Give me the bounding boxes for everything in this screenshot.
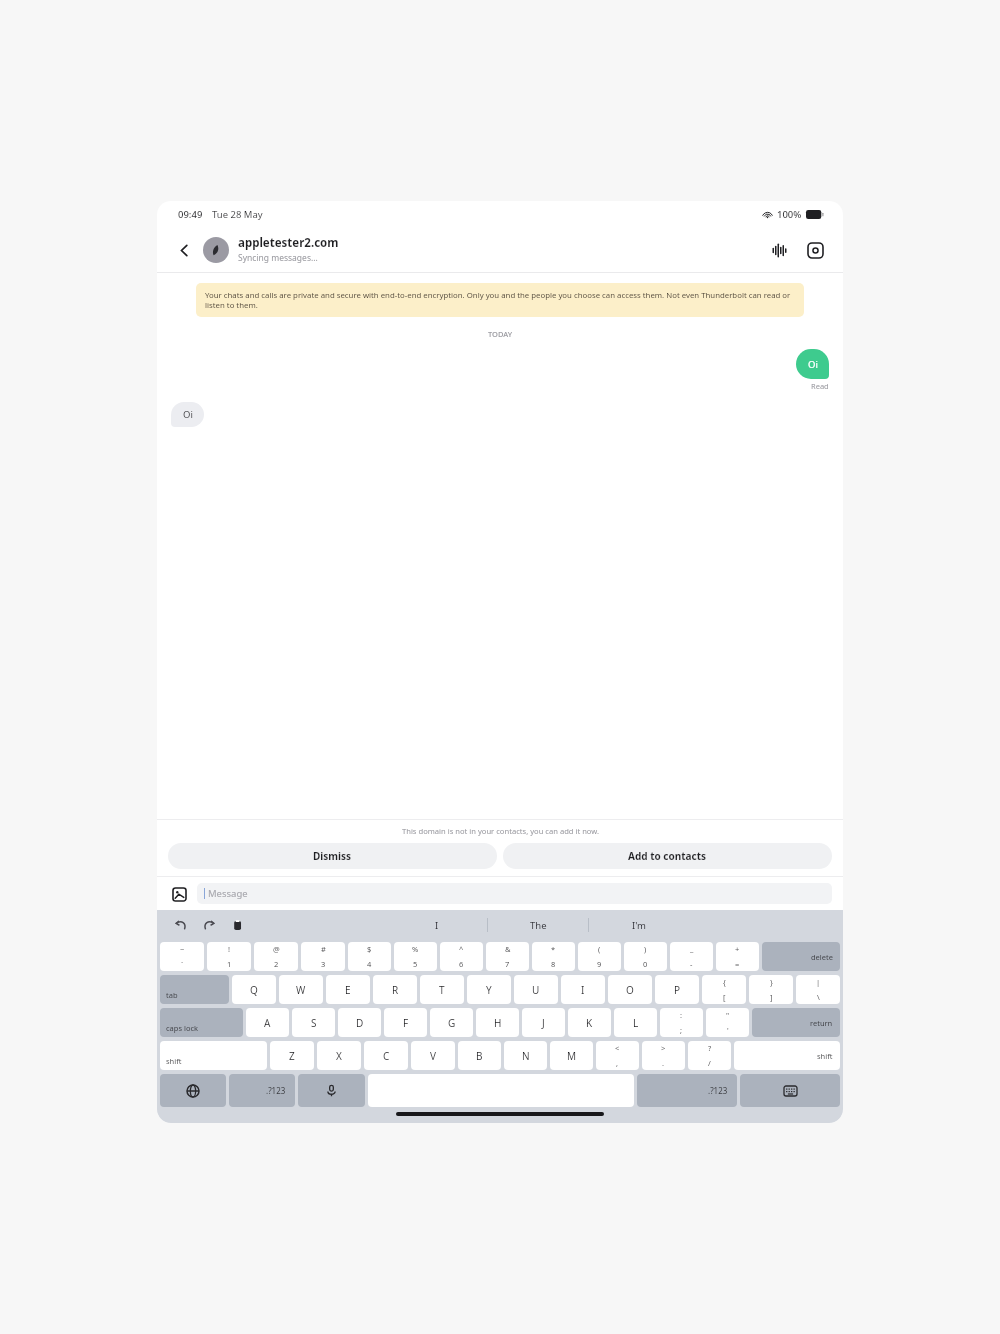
staticText: F (403, 1016, 409, 1030)
button[interactable]: Message (197, 883, 832, 904)
button[interactable]: Video call (801, 236, 829, 264)
button[interactable]: G (430, 1008, 473, 1037)
button[interactable]: Oi (171, 402, 204, 427)
staticText: H (494, 1016, 502, 1030)
button[interactable]: .?123 (637, 1074, 737, 1107)
button[interactable]: Add to contacts (503, 843, 832, 869)
staticText: " (726, 1010, 730, 1020)
button[interactable]: @ (254, 942, 298, 971)
button[interactable]: * (532, 942, 575, 971)
staticText: I (581, 983, 585, 997)
button[interactable]: appletester2.com (203, 235, 765, 264)
button[interactable]: return (752, 1008, 840, 1037)
button[interactable]: Y (467, 975, 511, 1004)
button[interactable]: # (301, 942, 345, 971)
button[interactable]: shift (734, 1041, 840, 1070)
button[interactable]: Oi (796, 349, 829, 379)
button[interactable]: { (702, 975, 746, 1004)
staticText: : (680, 1010, 683, 1020)
button[interactable]: S (292, 1008, 335, 1037)
button[interactable]: .?123 (229, 1074, 295, 1107)
staticText: ` (181, 959, 184, 969)
staticText: T (439, 983, 445, 997)
button[interactable]: M (550, 1041, 593, 1070)
staticText: 2 (274, 959, 279, 969)
button[interactable]: L (614, 1008, 657, 1037)
staticText: 9 (597, 959, 602, 969)
button[interactable]: N (504, 1041, 547, 1070)
button[interactable]: I (561, 975, 605, 1004)
staticText: A (264, 1016, 271, 1030)
button[interactable]: Change language (160, 1074, 226, 1107)
button[interactable]: Z (270, 1041, 314, 1070)
button[interactable]: D (338, 1008, 381, 1037)
staticText: # (321, 944, 326, 954)
button[interactable]: Attach image (168, 883, 190, 905)
button[interactable]: R (373, 975, 417, 1004)
button[interactable]: P (655, 975, 699, 1004)
button[interactable]: % (394, 942, 437, 971)
button[interactable]: ~ (160, 942, 204, 971)
staticText: - (690, 959, 693, 969)
button[interactable]: The (488, 910, 588, 940)
button[interactable]: Hide keyboard (740, 1074, 840, 1107)
button[interactable]: ) (624, 942, 667, 971)
staticText: ~ (180, 944, 185, 954)
button[interactable]: | (796, 975, 840, 1004)
button[interactable]: Q (232, 975, 276, 1004)
button[interactable]: I (387, 910, 487, 940)
button[interactable]: _ (670, 942, 713, 971)
button[interactable]: Dictate (298, 1074, 365, 1107)
button[interactable]: E (326, 975, 370, 1004)
staticText: appletester2.com (238, 235, 339, 251)
staticText: Add to contacts (628, 849, 707, 863)
button[interactable]: < (596, 1041, 639, 1070)
button[interactable]: ? (688, 1041, 731, 1070)
staticText: Z (289, 1049, 295, 1063)
staticText: 0 (643, 959, 648, 969)
button[interactable]: ( (578, 942, 621, 971)
button[interactable]: X (317, 1041, 361, 1070)
button[interactable]: ! (207, 942, 251, 971)
staticText: O (626, 983, 634, 997)
staticText: 100% (777, 208, 802, 221)
button[interactable]: + (716, 942, 759, 971)
button[interactable]: O (608, 975, 652, 1004)
button[interactable]: & (486, 942, 529, 971)
staticText: I'm (632, 919, 646, 932)
button[interactable]: " (706, 1008, 749, 1037)
button[interactable]: F (384, 1008, 427, 1037)
button[interactable]: Dismiss (168, 843, 497, 869)
button[interactable]: Paste (227, 915, 247, 935)
button[interactable]: W (279, 975, 323, 1004)
button[interactable]: B (458, 1041, 501, 1070)
button[interactable]: ^ (440, 942, 483, 971)
staticText: 8 (551, 959, 556, 969)
button[interactable]: I'm (589, 910, 689, 940)
button[interactable]: Undo (171, 915, 191, 935)
button[interactable]: K (568, 1008, 611, 1037)
staticText: Message (208, 887, 248, 900)
staticText: P (674, 983, 681, 997)
button[interactable]: delete (762, 942, 840, 971)
button[interactable]: tab (160, 975, 229, 1004)
button[interactable]: Redo (199, 915, 219, 935)
button[interactable]: H (476, 1008, 519, 1037)
button[interactable]: > (642, 1041, 685, 1070)
button[interactable]: shift (160, 1041, 267, 1070)
staticText: 6 (459, 959, 464, 969)
button[interactable]: T (420, 975, 464, 1004)
button[interactable]: V (411, 1041, 455, 1070)
button[interactable]: U (514, 975, 558, 1004)
button[interactable]: } (749, 975, 793, 1004)
button[interactable]: C (364, 1041, 408, 1070)
button[interactable]: J (522, 1008, 565, 1037)
button[interactable]: Voice call (765, 236, 793, 264)
button[interactable]: Back (171, 237, 197, 263)
button[interactable]: A (246, 1008, 289, 1037)
button[interactable]: caps lock (160, 1008, 243, 1037)
button[interactable]: $ (348, 942, 391, 971)
staticText: J (542, 1016, 545, 1030)
button[interactable]: : (660, 1008, 703, 1037)
